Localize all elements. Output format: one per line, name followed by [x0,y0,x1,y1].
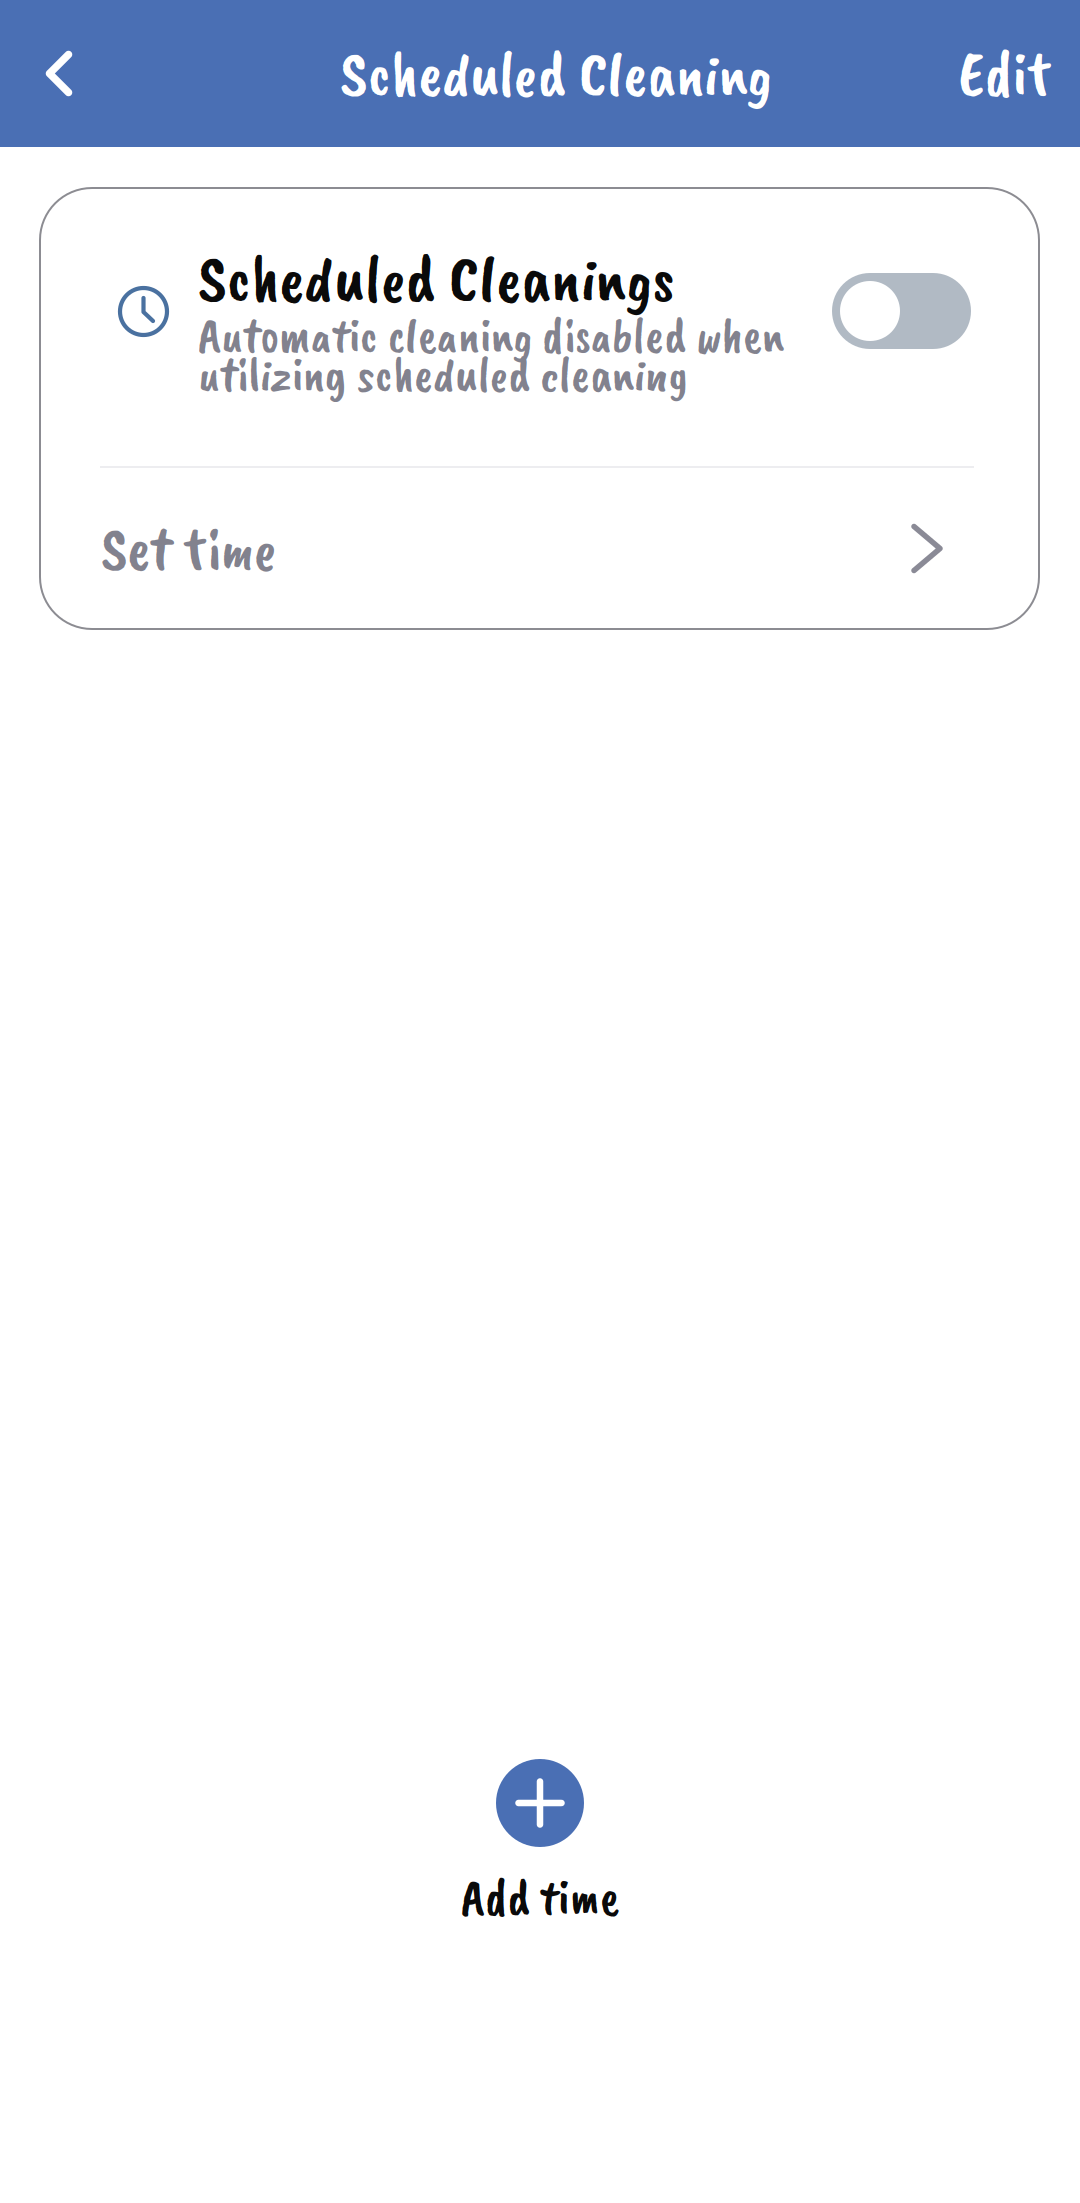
staticText: Edit [958,33,1051,114]
staticText: utilizing scheduled cleaning [198,343,688,405]
button[interactable]: Edit [930,0,1080,147]
staticText: Set time [101,510,276,587]
button[interactable]: Set time [40,468,1039,629]
staticText: Automatic cleaning disabled when [198,304,784,366]
staticText: Scheduled Cleaning [340,33,772,114]
button[interactable]: Add time [340,1759,740,1929]
button[interactable]: Scheduled Cleanings [40,188,1039,466]
staticText: Add time [461,1865,619,1929]
staticText: Scheduled Cleanings [198,236,675,320]
button[interactable]: Back [0,0,118,147]
